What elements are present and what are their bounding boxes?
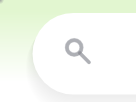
button[interactable]: Search xyxy=(0,0,136,102)
